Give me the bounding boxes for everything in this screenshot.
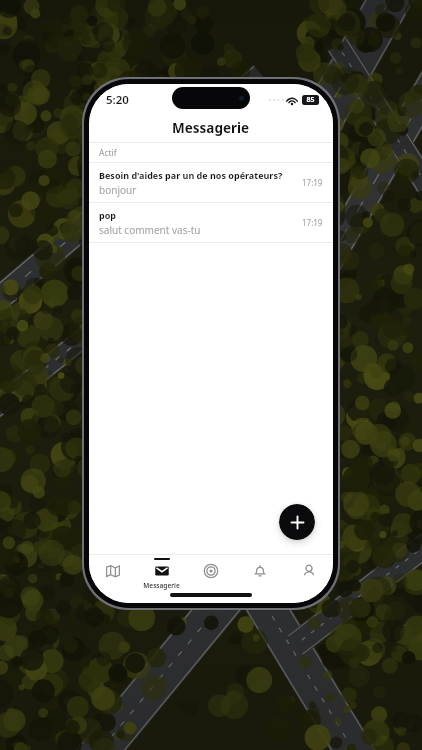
staticText: Besoin d'aides par un de nos opérateurs? bbox=[99, 169, 283, 181]
staticText: Actif bbox=[99, 147, 117, 159]
button[interactable]: Messagerie bbox=[137, 555, 186, 603]
staticText: salut comment vas-tu bbox=[99, 223, 201, 237]
staticText: bonjour bbox=[99, 183, 137, 197]
button[interactable]: Notifications bbox=[235, 555, 284, 603]
button[interactable]: Discover bbox=[186, 555, 235, 603]
staticText: Messagerie bbox=[143, 581, 180, 590]
staticText: 5:20 bbox=[106, 92, 129, 108]
button[interactable]: New message bbox=[279, 504, 315, 540]
button[interactable]: Profile bbox=[284, 555, 333, 603]
button[interactable]: Map bbox=[89, 555, 137, 603]
staticText: 17:19 bbox=[302, 217, 323, 228]
button[interactable]: Besoin d'aides par un de nos opérateurs? bbox=[89, 163, 333, 202]
staticText: Messagerie bbox=[172, 119, 250, 137]
staticText: pop bbox=[99, 209, 117, 221]
staticText: 85 bbox=[306, 95, 315, 105]
button[interactable]: pop bbox=[89, 203, 333, 242]
staticText: 17:19 bbox=[302, 177, 323, 188]
